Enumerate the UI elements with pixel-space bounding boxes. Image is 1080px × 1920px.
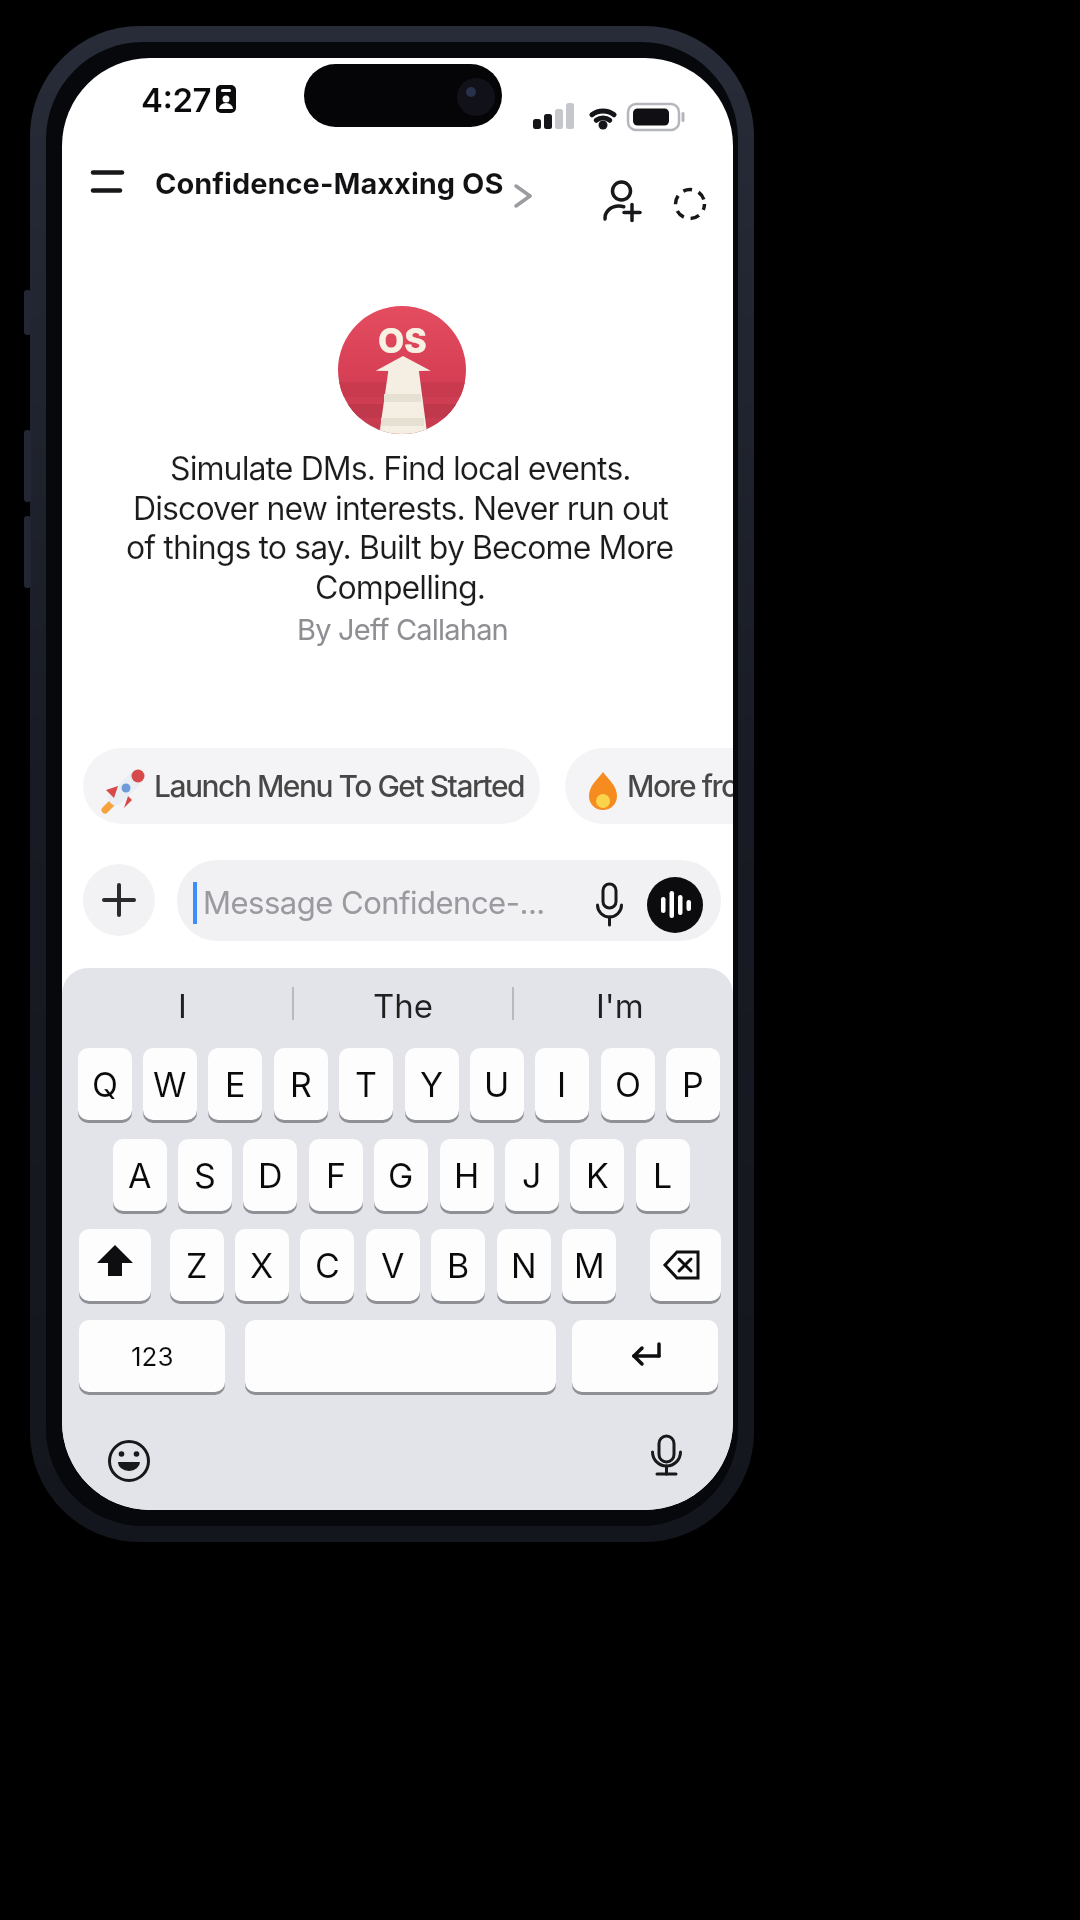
staticText: Q bbox=[92, 1064, 118, 1105]
staticText: G bbox=[388, 1155, 414, 1196]
button[interactable]: Launch Menu To Get Started bbox=[83, 748, 540, 824]
button[interactable]: A bbox=[113, 1139, 167, 1211]
button[interactable]: N bbox=[497, 1229, 551, 1301]
button[interactable]: Y bbox=[405, 1048, 459, 1120]
button[interactable]: Z bbox=[170, 1229, 224, 1301]
button[interactable] bbox=[177, 860, 721, 941]
button[interactable] bbox=[79, 1229, 151, 1301]
button[interactable]: Q bbox=[78, 1048, 132, 1120]
button[interactable]: O bbox=[601, 1048, 655, 1120]
staticText: Z bbox=[186, 1245, 208, 1286]
staticText: A bbox=[128, 1155, 152, 1196]
button[interactable] bbox=[650, 1229, 721, 1301]
button[interactable] bbox=[245, 1320, 556, 1392]
staticText: W bbox=[153, 1064, 187, 1105]
staticText: I bbox=[178, 986, 187, 1026]
button[interactable]: S bbox=[178, 1139, 232, 1211]
staticText: X bbox=[250, 1245, 274, 1286]
button[interactable] bbox=[668, 182, 714, 226]
button[interactable]: V bbox=[366, 1229, 420, 1301]
staticText: Discover new interests. Never run out bbox=[133, 489, 668, 528]
button[interactable]: K bbox=[570, 1139, 624, 1211]
staticText: By Jeff Callahan bbox=[297, 612, 508, 647]
button[interactable] bbox=[647, 877, 703, 933]
button[interactable]: P bbox=[666, 1048, 720, 1120]
staticText: L bbox=[653, 1155, 673, 1196]
button[interactable]: J bbox=[505, 1139, 559, 1211]
button[interactable] bbox=[150, 162, 542, 210]
staticText: I'm bbox=[596, 986, 644, 1026]
staticText: T bbox=[355, 1064, 377, 1105]
staticText: K bbox=[586, 1155, 609, 1196]
button[interactable] bbox=[127, 980, 239, 1026]
button[interactable]: M bbox=[562, 1229, 616, 1301]
staticText: S bbox=[194, 1155, 216, 1196]
staticText: Launch Menu To Get Started bbox=[154, 768, 525, 804]
button[interactable]: U bbox=[470, 1048, 524, 1120]
staticText: 4:27 bbox=[141, 80, 212, 120]
staticText: F bbox=[326, 1155, 347, 1196]
button[interactable] bbox=[572, 1320, 718, 1392]
button[interactable]: D bbox=[243, 1139, 297, 1211]
staticText: Simulate DMs. Find local events. bbox=[170, 449, 631, 488]
staticText: OS bbox=[378, 320, 427, 361]
staticText: J bbox=[522, 1155, 542, 1196]
staticText: The bbox=[373, 986, 434, 1026]
staticText: Confidence-Maxxing OS bbox=[155, 166, 504, 201]
staticText: N bbox=[511, 1245, 537, 1286]
button[interactable] bbox=[585, 872, 633, 934]
staticText: E bbox=[225, 1064, 246, 1105]
button[interactable]: 123 bbox=[79, 1320, 225, 1392]
button[interactable]: F bbox=[309, 1139, 363, 1211]
staticText: I bbox=[557, 1064, 567, 1105]
button[interactable]: W bbox=[143, 1048, 197, 1120]
button[interactable] bbox=[103, 1435, 155, 1487]
button[interactable] bbox=[640, 1428, 692, 1482]
staticText: O bbox=[615, 1064, 641, 1105]
staticText: C bbox=[315, 1245, 340, 1286]
button[interactable] bbox=[85, 160, 131, 204]
staticText: R bbox=[290, 1064, 312, 1105]
button[interactable]: I bbox=[535, 1048, 589, 1120]
staticText: Compelling. bbox=[315, 568, 485, 607]
button[interactable]: G bbox=[374, 1139, 428, 1211]
button[interactable]: More from bbox=[565, 748, 733, 824]
button[interactable] bbox=[564, 980, 676, 1026]
button[interactable]: T bbox=[339, 1048, 393, 1120]
staticText: M bbox=[574, 1245, 605, 1286]
button[interactable]: X bbox=[235, 1229, 289, 1301]
button[interactable] bbox=[83, 864, 155, 936]
staticText: P bbox=[682, 1064, 704, 1105]
button[interactable]: L bbox=[636, 1139, 690, 1211]
staticText: More from bbox=[627, 768, 733, 804]
staticText: Message Confidence-... bbox=[203, 884, 545, 922]
button[interactable]: R bbox=[274, 1048, 328, 1120]
staticText: B bbox=[447, 1245, 470, 1286]
staticText: D bbox=[258, 1155, 283, 1196]
button[interactable]: H bbox=[440, 1139, 494, 1211]
staticText: of things to say. Built by Become More bbox=[126, 528, 674, 567]
staticText: Y bbox=[420, 1064, 444, 1105]
staticText: H bbox=[454, 1155, 480, 1196]
button[interactable] bbox=[347, 980, 459, 1026]
button[interactable]: C bbox=[300, 1229, 354, 1301]
button[interactable]: E bbox=[208, 1048, 262, 1120]
button[interactable] bbox=[600, 178, 648, 226]
staticText: 123 bbox=[131, 1341, 174, 1372]
button[interactable]: B bbox=[431, 1229, 485, 1301]
staticText: V bbox=[381, 1245, 405, 1286]
staticText: U bbox=[484, 1064, 510, 1105]
